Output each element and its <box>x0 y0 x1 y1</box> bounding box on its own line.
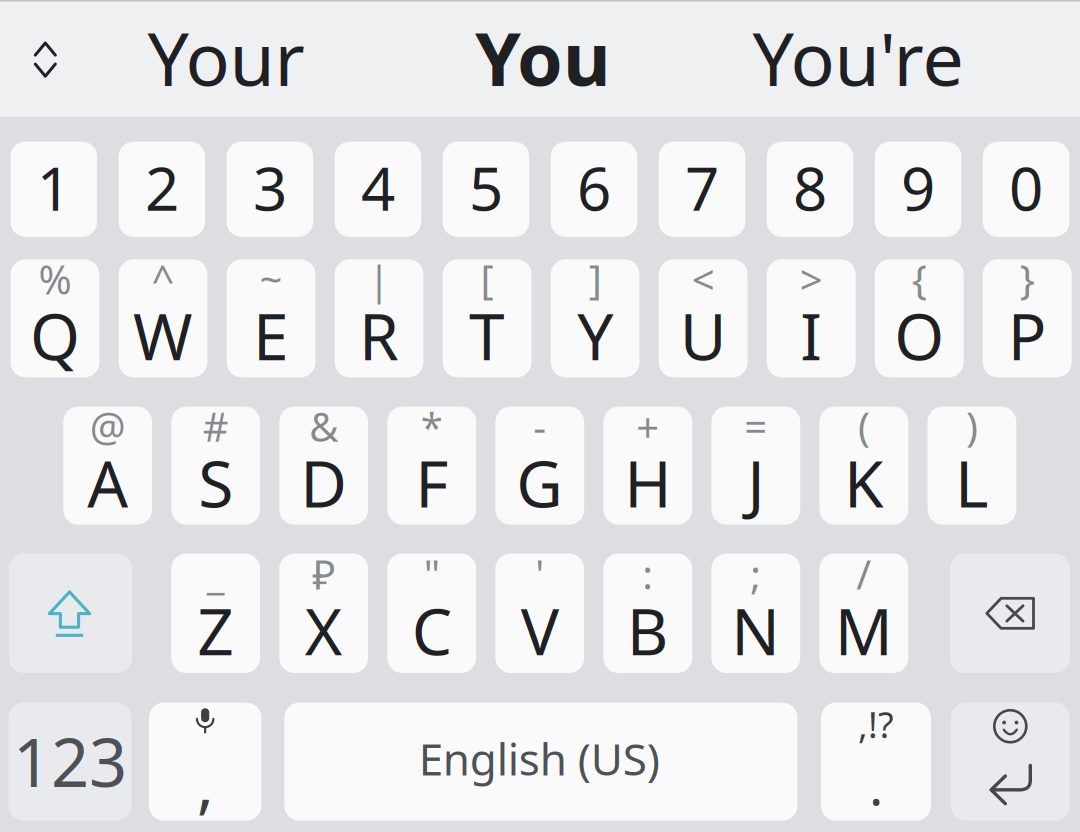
staticText: 3 <box>253 148 287 227</box>
staticText: & <box>309 400 338 453</box>
staticText: 123 <box>13 717 127 805</box>
button[interactable]: Backspace <box>950 554 1070 673</box>
staticText: You're <box>752 9 963 106</box>
button[interactable]: X <box>279 554 368 673</box>
staticText: _ <box>207 547 225 600</box>
staticText: ₽ <box>312 547 335 600</box>
staticText: I <box>800 293 822 378</box>
staticText: ( <box>858 400 870 453</box>
staticText: < <box>692 252 715 306</box>
button[interactable]: A <box>63 407 152 525</box>
staticText: = <box>744 400 767 453</box>
staticText: V <box>521 588 559 673</box>
button[interactable]: O <box>875 259 964 377</box>
staticText: # <box>203 400 229 453</box>
staticText: E <box>253 293 289 378</box>
staticText: X <box>305 588 343 673</box>
button[interactable]: E <box>227 259 315 377</box>
staticText: G <box>516 440 563 525</box>
staticText: | <box>368 252 390 306</box>
button[interactable]: I <box>767 259 856 377</box>
button[interactable]: B <box>603 554 692 673</box>
button[interactable]: You <box>386 0 699 117</box>
staticText: . <box>869 749 883 820</box>
button[interactable]: 1 <box>11 142 97 237</box>
staticText: P <box>1008 293 1047 378</box>
button[interactable]: W <box>119 259 207 377</box>
staticText: 7 <box>685 148 719 227</box>
staticText: ^ <box>151 252 174 306</box>
button[interactable]: 8 <box>767 142 853 237</box>
staticText: D <box>300 440 347 525</box>
staticText: / <box>856 547 871 600</box>
staticText: W <box>133 293 193 378</box>
button[interactable]: Symbols <box>9 703 132 821</box>
staticText: R <box>359 293 399 378</box>
staticText: A <box>87 440 128 525</box>
staticText: 2 <box>145 148 179 227</box>
button[interactable]: Shift <box>9 554 132 673</box>
staticText: T <box>469 293 505 378</box>
staticText: 1 <box>37 148 71 227</box>
staticText: You <box>475 9 611 106</box>
staticText: F <box>415 440 448 525</box>
staticText: ) <box>966 400 978 453</box>
button[interactable]: 2 <box>119 142 205 237</box>
staticText: 4 <box>361 148 395 227</box>
staticText: English (US) <box>419 729 660 788</box>
staticText: Your <box>147 9 304 106</box>
button[interactable]: P <box>983 259 1072 377</box>
staticText: 0 <box>1009 148 1043 227</box>
button[interactable]: C <box>387 554 476 673</box>
button[interactable]: Punctuation <box>821 703 931 821</box>
staticText: C <box>412 588 452 673</box>
button[interactable]: Y <box>551 259 640 377</box>
button[interactable]: L <box>927 407 1016 525</box>
staticText: Q <box>30 293 80 378</box>
button[interactable]: Voice input <box>149 703 261 821</box>
button[interactable]: M <box>819 554 908 673</box>
button[interactable]: 9 <box>875 142 961 237</box>
button[interactable]: V <box>495 554 584 673</box>
button[interactable]: T <box>443 259 531 377</box>
button[interactable]: S <box>171 407 260 525</box>
button[interactable]: U <box>659 259 748 377</box>
staticText: O <box>894 293 944 378</box>
staticText: , <box>197 740 214 825</box>
button[interactable]: F <box>387 407 476 525</box>
staticText: L <box>955 440 989 525</box>
button[interactable]: Q <box>11 259 99 377</box>
button[interactable]: You're <box>701 0 1014 117</box>
staticText: * <box>421 400 443 453</box>
button[interactable]: 0 <box>983 142 1069 237</box>
button[interactable]: H <box>603 407 692 525</box>
staticText: % <box>38 252 71 306</box>
staticText: - <box>533 400 546 453</box>
staticText: J <box>747 440 764 525</box>
button[interactable]: Space <box>284 703 797 821</box>
button[interactable]: Expand suggestions <box>0 1 91 118</box>
button[interactable]: J <box>711 407 800 525</box>
button[interactable]: Your <box>69 0 382 117</box>
staticText: Y <box>577 293 613 378</box>
button[interactable]: D <box>279 407 368 525</box>
staticText: 8 <box>793 148 827 227</box>
button[interactable]: R <box>335 259 423 377</box>
button[interactable]: N <box>711 554 800 673</box>
button[interactable]: 5 <box>443 142 529 237</box>
button[interactable]: K <box>819 407 908 525</box>
staticText: + <box>636 400 659 453</box>
button[interactable]: Return <box>951 703 1070 821</box>
staticText: 9 <box>901 148 935 227</box>
staticText: ; <box>750 547 761 600</box>
button[interactable]: 7 <box>659 142 745 237</box>
button[interactable]: G <box>495 407 584 525</box>
button[interactable]: 6 <box>551 142 637 237</box>
staticText: ,!? <box>858 700 894 748</box>
staticText: M <box>835 588 893 673</box>
button[interactable]: 3 <box>227 142 313 237</box>
staticText: ] <box>589 252 602 306</box>
button[interactable]: Z <box>171 554 260 673</box>
button[interactable]: 4 <box>335 142 421 237</box>
staticText: S <box>198 440 233 525</box>
